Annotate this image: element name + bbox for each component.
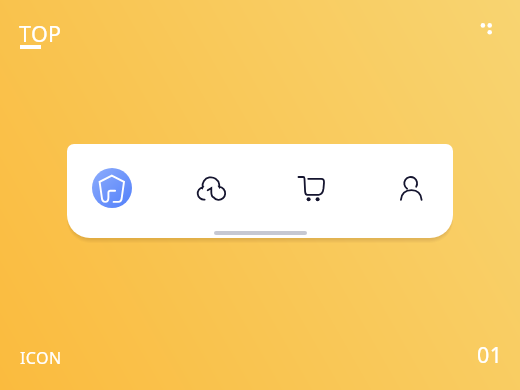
button[interactable]: More options	[472, 15, 498, 41]
staticText: ICON	[20, 347, 62, 369]
button[interactable]: TOP	[14, 16, 66, 56]
button[interactable]: Home	[67, 144, 160, 232]
staticText: 01	[477, 340, 503, 369]
staticText: TOP	[19, 19, 62, 48]
button[interactable]: Profile	[364, 144, 453, 232]
button[interactable]: Cart	[264, 144, 360, 232]
button[interactable]: ICON	[16, 344, 58, 366]
button[interactable]: Upload	[164, 144, 260, 232]
